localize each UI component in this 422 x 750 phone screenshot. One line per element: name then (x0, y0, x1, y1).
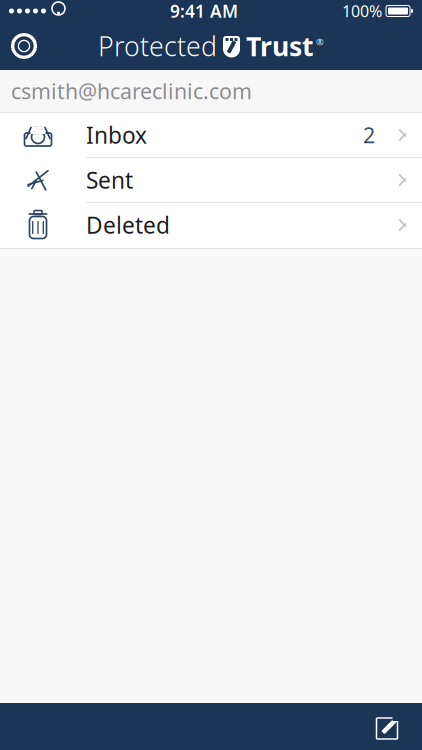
staticText: Inbox (86, 120, 147, 150)
button[interactable]: Deleted (0, 203, 422, 248)
staticText: Trust (246, 28, 314, 64)
staticText: Deleted (86, 210, 170, 240)
button[interactable]: Sent (0, 158, 422, 203)
button[interactable]: Settings (0, 22, 48, 70)
button[interactable]: Compose (365, 703, 412, 750)
button[interactable]: Inbox (0, 113, 422, 158)
staticText: Protected (98, 28, 217, 64)
staticText: 9:41 AM (170, 0, 238, 22)
staticText: 2 (363, 121, 375, 149)
staticText: csmith@hcareclinic.com (11, 77, 252, 105)
staticText: 100% (342, 0, 382, 22)
staticText: ® (316, 36, 324, 48)
staticText: Sent (86, 165, 133, 195)
